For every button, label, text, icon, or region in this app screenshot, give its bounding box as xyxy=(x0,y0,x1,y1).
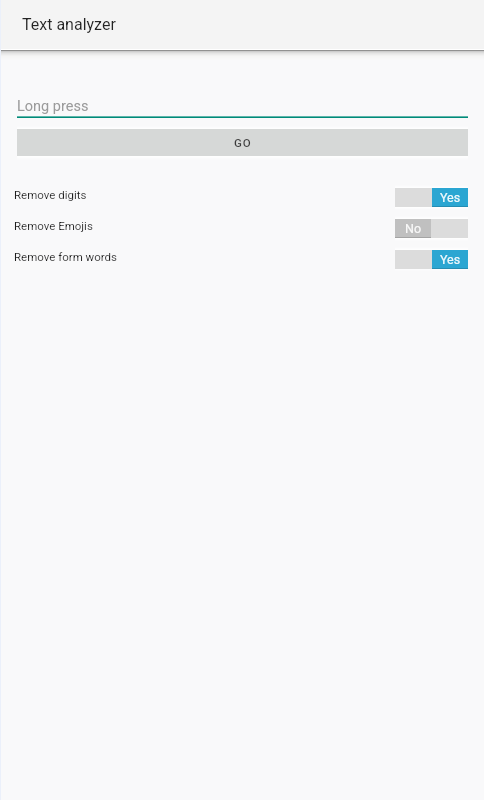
staticText: Yes xyxy=(440,252,461,267)
staticText: Remove digits xyxy=(14,188,87,201)
button[interactable]: Long press xyxy=(17,96,468,118)
button[interactable]: GO xyxy=(17,129,468,156)
staticText: GO xyxy=(234,136,252,149)
button[interactable]: Yes xyxy=(395,188,468,207)
staticText: Yes xyxy=(440,190,461,205)
staticText: Text analyzer xyxy=(22,15,116,34)
staticText: Remove form words xyxy=(14,250,117,263)
button[interactable]: No xyxy=(395,219,468,238)
staticText: Remove Emojis xyxy=(14,219,93,232)
staticText: No xyxy=(405,221,422,236)
staticText: Long press xyxy=(17,98,89,115)
button[interactable]: Yes xyxy=(395,250,468,269)
